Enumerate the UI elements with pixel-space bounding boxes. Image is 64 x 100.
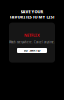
staticText: Watch everywhere. Cancel anytime.: [9, 40, 55, 44]
staticText: SAVE YOUR: [20, 9, 43, 14]
staticText: NETFLIX: [24, 33, 40, 38]
staticText: FAVORITES TO MY LIST: [9, 14, 54, 20]
button[interactable]: GET STARTED: [17, 48, 47, 53]
staticText: GET STARTED: [23, 49, 40, 52]
